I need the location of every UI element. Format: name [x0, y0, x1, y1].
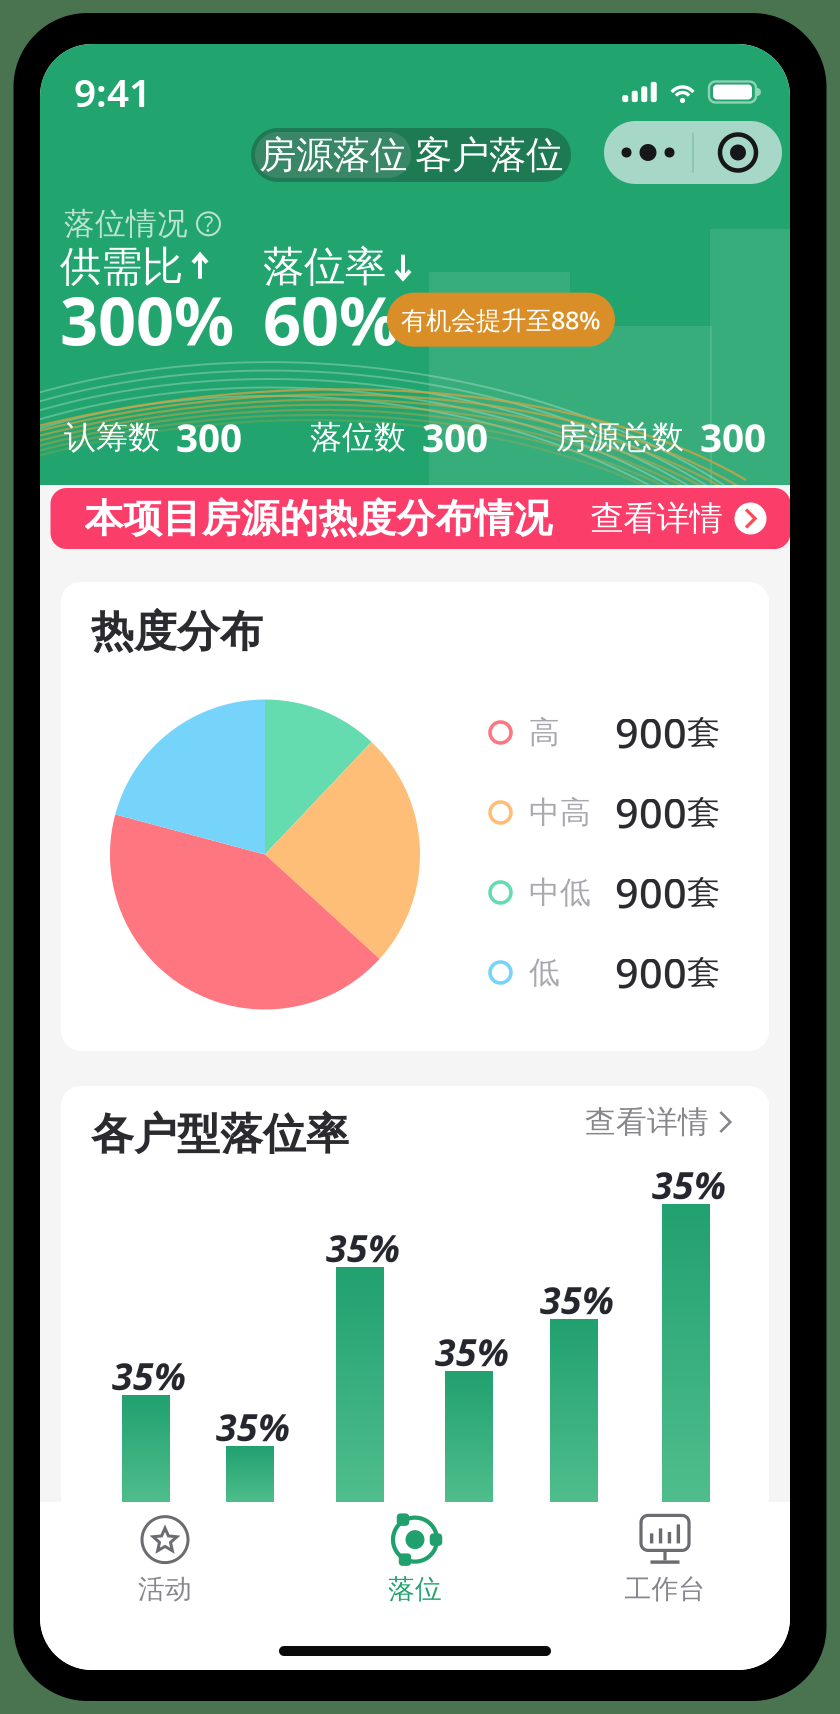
button[interactable]: 房源落位 — [255, 132, 411, 178]
staticText: 认筹数 — [64, 418, 160, 457]
staticText: 房源落位 — [259, 132, 407, 178]
staticText: 套 — [687, 792, 720, 833]
button[interactable]: 落位 — [290, 1514, 540, 1606]
staticText: 35% — [652, 1160, 726, 1210]
button[interactable]: 工作台 — [540, 1514, 790, 1606]
button[interactable]: 客户落位 — [411, 132, 567, 178]
staticText: 套 — [687, 952, 720, 993]
staticText: 35% — [435, 1327, 509, 1377]
staticText: 900 — [615, 705, 687, 760]
staticText: 落位率 — [263, 241, 386, 292]
staticText: 35% — [216, 1402, 290, 1452]
staticText: 高 — [529, 714, 560, 751]
staticText: 查看详情 — [585, 1103, 709, 1141]
staticText: 工作台 — [624, 1573, 705, 1605]
staticText: 套 — [687, 712, 720, 753]
staticText: 各户型落位率 — [91, 1108, 349, 1160]
button[interactable]: 本项目房源的热度分布情况 — [50, 488, 790, 549]
staticText: 35% — [326, 1223, 400, 1273]
staticText: 900 — [615, 865, 687, 920]
staticText: 活动 — [138, 1573, 192, 1605]
staticText: 中低 — [529, 874, 591, 911]
staticText: 300 — [176, 412, 242, 463]
staticText: 900 — [615, 945, 687, 1000]
staticText: 有机会提升至88% — [401, 303, 601, 336]
staticText: 客户落位 — [415, 132, 563, 178]
staticText: 300 — [422, 412, 488, 463]
staticText: 60% — [263, 275, 399, 364]
staticText: 套 — [687, 872, 720, 913]
staticText: 供需比 — [60, 241, 183, 292]
staticText: 低 — [529, 954, 560, 991]
staticText: 查看详情 — [590, 498, 722, 539]
staticText: 35% — [540, 1275, 614, 1325]
staticText: 落位数 — [310, 418, 406, 457]
staticText: 落位 — [388, 1573, 442, 1605]
staticText: ? — [204, 210, 213, 238]
staticText: 中高 — [529, 794, 591, 831]
staticText: 热度分布 — [91, 605, 263, 658]
button[interactable]: 查看详情 — [585, 1100, 732, 1144]
button[interactable]: 活动 — [40, 1514, 290, 1606]
staticText: 落位情况 — [64, 205, 188, 243]
staticText: 本项目房源的热度分布情况 — [84, 495, 552, 542]
button[interactable]: Locate — [694, 121, 782, 184]
staticText: 35% — [112, 1351, 186, 1401]
staticText: 900 — [615, 785, 687, 840]
staticText: 房源总数 — [556, 418, 684, 457]
staticText: 300 — [700, 412, 766, 463]
staticText: 9:41 — [74, 66, 151, 118]
button[interactable]: More options — [604, 121, 692, 184]
staticText: 300% — [60, 275, 234, 364]
